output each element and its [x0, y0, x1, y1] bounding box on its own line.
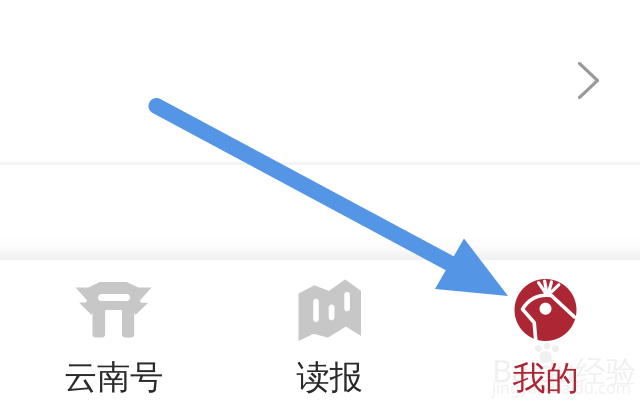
button[interactable]: 我的 [437, 260, 640, 408]
staticText: 云南号 [64, 357, 163, 398]
button[interactable]: Open [578, 62, 599, 99]
button[interactable]: 读报 [221, 260, 437, 408]
staticText: Baidu经验 [492, 350, 637, 391]
button[interactable]: 云南号 [5, 260, 221, 408]
staticText: 读报 [296, 357, 362, 398]
staticText: 我的 [512, 358, 578, 399]
staticText: jingyan.baidu.com [492, 377, 631, 398]
